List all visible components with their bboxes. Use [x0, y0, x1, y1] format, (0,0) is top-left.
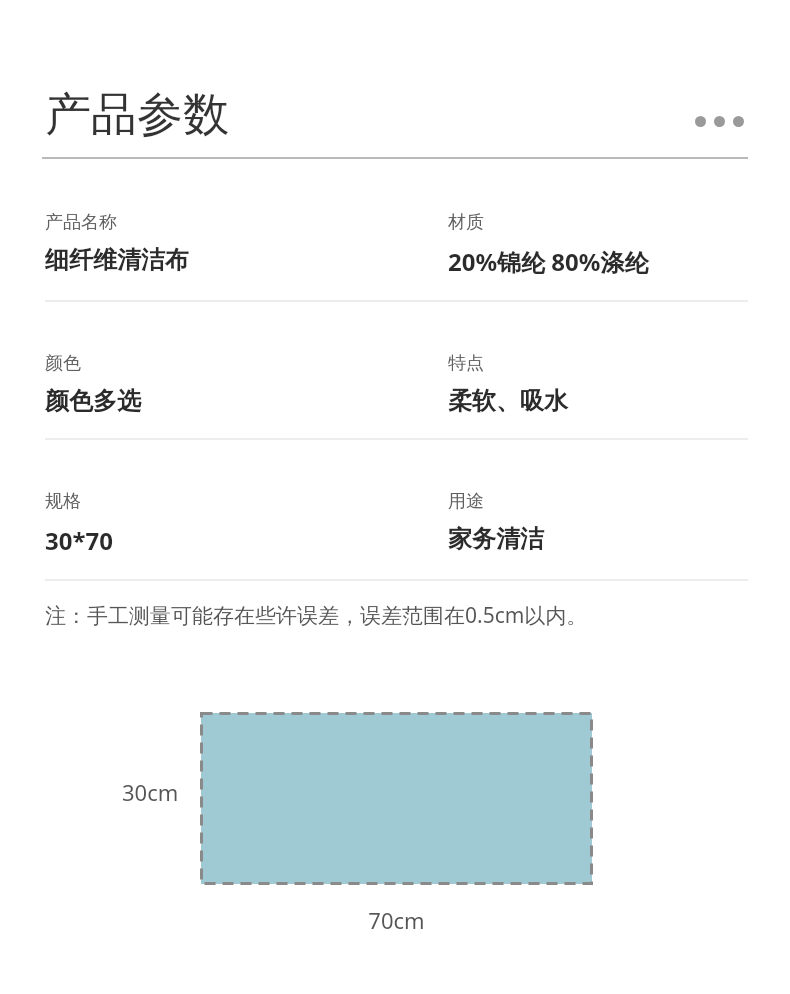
staticText: 30cm — [122, 777, 179, 807]
staticText: 产品名称 — [45, 211, 117, 234]
staticText: 用途 — [448, 490, 484, 513]
staticText: 注：手工测量可能存在些许误差，误差范围在0.5cm以内。 — [45, 601, 588, 630]
button[interactable]: 用途 — [448, 490, 748, 554]
button[interactable]: 特点 — [448, 352, 748, 416]
button[interactable]: More options — [689, 110, 750, 133]
staticText: 特点 — [448, 352, 484, 375]
button[interactable]: 材质 — [448, 211, 748, 278]
button[interactable]: 产品参数 — [45, 86, 229, 144]
staticText: 颜色多选 — [45, 386, 141, 416]
staticText: 细纤维清洁布 — [45, 245, 189, 275]
staticText: 规格 — [45, 490, 81, 513]
staticText: 颜色 — [45, 352, 81, 375]
staticText: 70cm — [201, 905, 592, 935]
staticText: 30*70 — [45, 524, 113, 557]
staticText: 20%锦纶 80%涤纶 — [448, 245, 649, 278]
staticText: 材质 — [448, 211, 484, 234]
button[interactable]: 规格 — [45, 490, 448, 557]
button[interactable]: 产品名称 — [45, 211, 448, 275]
staticText: 柔软、吸水 — [448, 386, 568, 416]
staticText: 家务清洁 — [448, 524, 544, 554]
button[interactable]: 颜色 — [45, 352, 448, 416]
